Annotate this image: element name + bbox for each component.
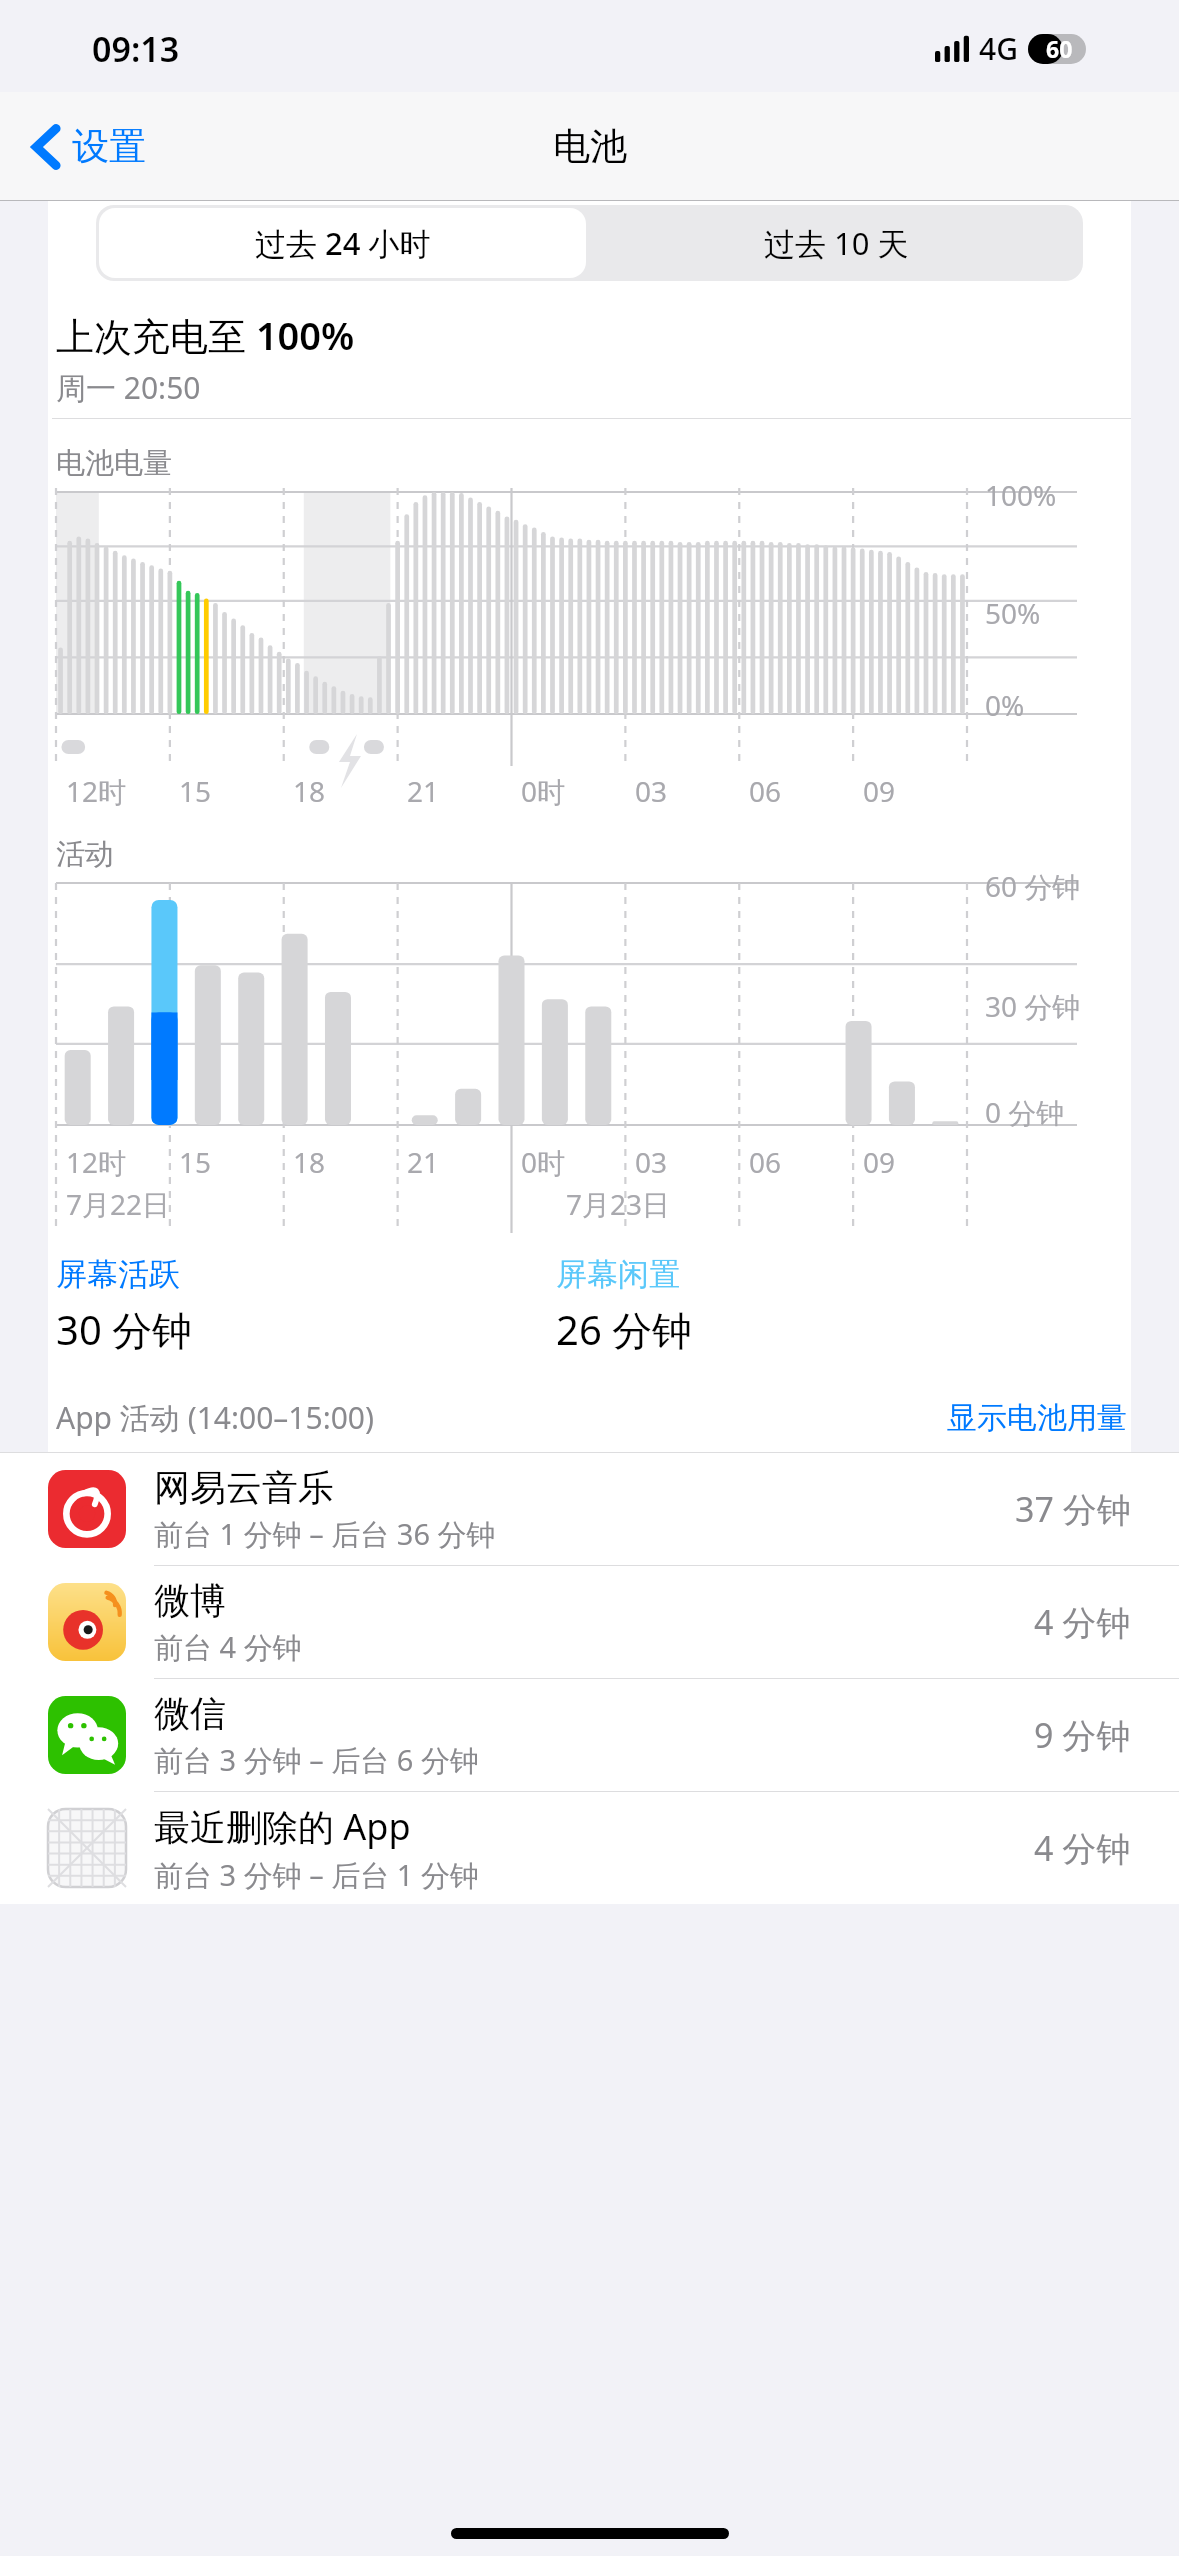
- staticText: 09: [863, 772, 896, 810]
- staticText: 60 分钟: [985, 867, 1081, 905]
- button[interactable]: 显示电池用量: [947, 1399, 1127, 1437]
- staticText: 12时: [66, 772, 127, 810]
- staticText: 前台 4 分钟: [154, 1627, 302, 1667]
- staticText: 7月22日: [66, 1185, 171, 1223]
- staticText: 60: [1046, 33, 1073, 64]
- staticText: App 活动 (14:00–15:00): [56, 1397, 375, 1438]
- staticText: 设置: [72, 123, 146, 170]
- staticText: 0时: [521, 1143, 566, 1181]
- staticText: 09:13: [92, 26, 180, 72]
- staticText: 过去 24 小时: [255, 222, 431, 264]
- staticText: 9 分钟: [1034, 1712, 1131, 1758]
- staticText: 30 分钟: [56, 1302, 193, 1357]
- staticText: 100%: [985, 476, 1057, 514]
- staticText: 活动: [56, 836, 114, 873]
- button[interactable]: 网易云音乐: [0, 1453, 1179, 1566]
- staticText: 15: [179, 1143, 212, 1181]
- staticText: 4G: [979, 28, 1018, 69]
- staticText: 30 分钟: [985, 987, 1081, 1025]
- staticText: 21: [407, 1143, 440, 1181]
- staticText: 06: [749, 1143, 782, 1181]
- staticText: 06: [749, 772, 782, 810]
- staticText: 上次充电至 100%: [56, 309, 355, 361]
- staticText: 37 分钟: [1015, 1486, 1131, 1532]
- staticText: 26 分钟: [556, 1302, 693, 1357]
- staticText: 03: [635, 772, 668, 810]
- staticText: 电池电量: [56, 445, 172, 482]
- button[interactable]: 微博: [0, 1566, 1179, 1679]
- staticText: 0 分钟: [985, 1093, 1065, 1131]
- staticText: 电池: [553, 123, 627, 170]
- staticText: 屏幕活跃: [56, 1255, 180, 1294]
- staticText: 18: [293, 1143, 326, 1181]
- staticText: 过去 10 天: [764, 222, 909, 264]
- staticText: 微博: [154, 1578, 226, 1623]
- button[interactable]: 最近删除的 App: [0, 1792, 1179, 1904]
- staticText: 显示电池用量: [947, 1399, 1127, 1437]
- button[interactable]: 过去 24 小时: [99, 208, 586, 278]
- staticText: 前台 1 分钟 – 后台 36 分钟: [154, 1514, 496, 1554]
- staticText: 微信: [154, 1691, 226, 1736]
- staticText: 最近删除的 App: [154, 1802, 411, 1851]
- staticText: 前台 3 分钟 – 后台 6 分钟: [154, 1740, 479, 1780]
- staticText: 18: [293, 772, 326, 810]
- staticText: 09: [863, 1143, 896, 1181]
- staticText: 屏幕闲置: [556, 1255, 680, 1294]
- staticText: 4 分钟: [1034, 1599, 1131, 1645]
- staticText: 前台 3 分钟 – 后台 1 分钟: [154, 1855, 479, 1895]
- staticText: 50%: [985, 594, 1041, 632]
- button[interactable]: 过去 10 天: [589, 205, 1083, 281]
- button[interactable]: 设置: [26, 115, 154, 178]
- staticText: 12时: [66, 1143, 127, 1181]
- staticText: 0%: [985, 686, 1025, 724]
- staticText: 7月23日: [566, 1185, 671, 1223]
- staticText: 0时: [521, 772, 566, 810]
- button[interactable]: 微信: [0, 1679, 1179, 1792]
- staticText: 15: [179, 772, 212, 810]
- staticText: 4 分钟: [1034, 1825, 1131, 1871]
- staticText: 网易云音乐: [154, 1465, 334, 1510]
- staticText: 21: [407, 772, 440, 810]
- staticText: 周一 20:50: [56, 367, 201, 408]
- staticText: 03: [635, 1143, 668, 1181]
